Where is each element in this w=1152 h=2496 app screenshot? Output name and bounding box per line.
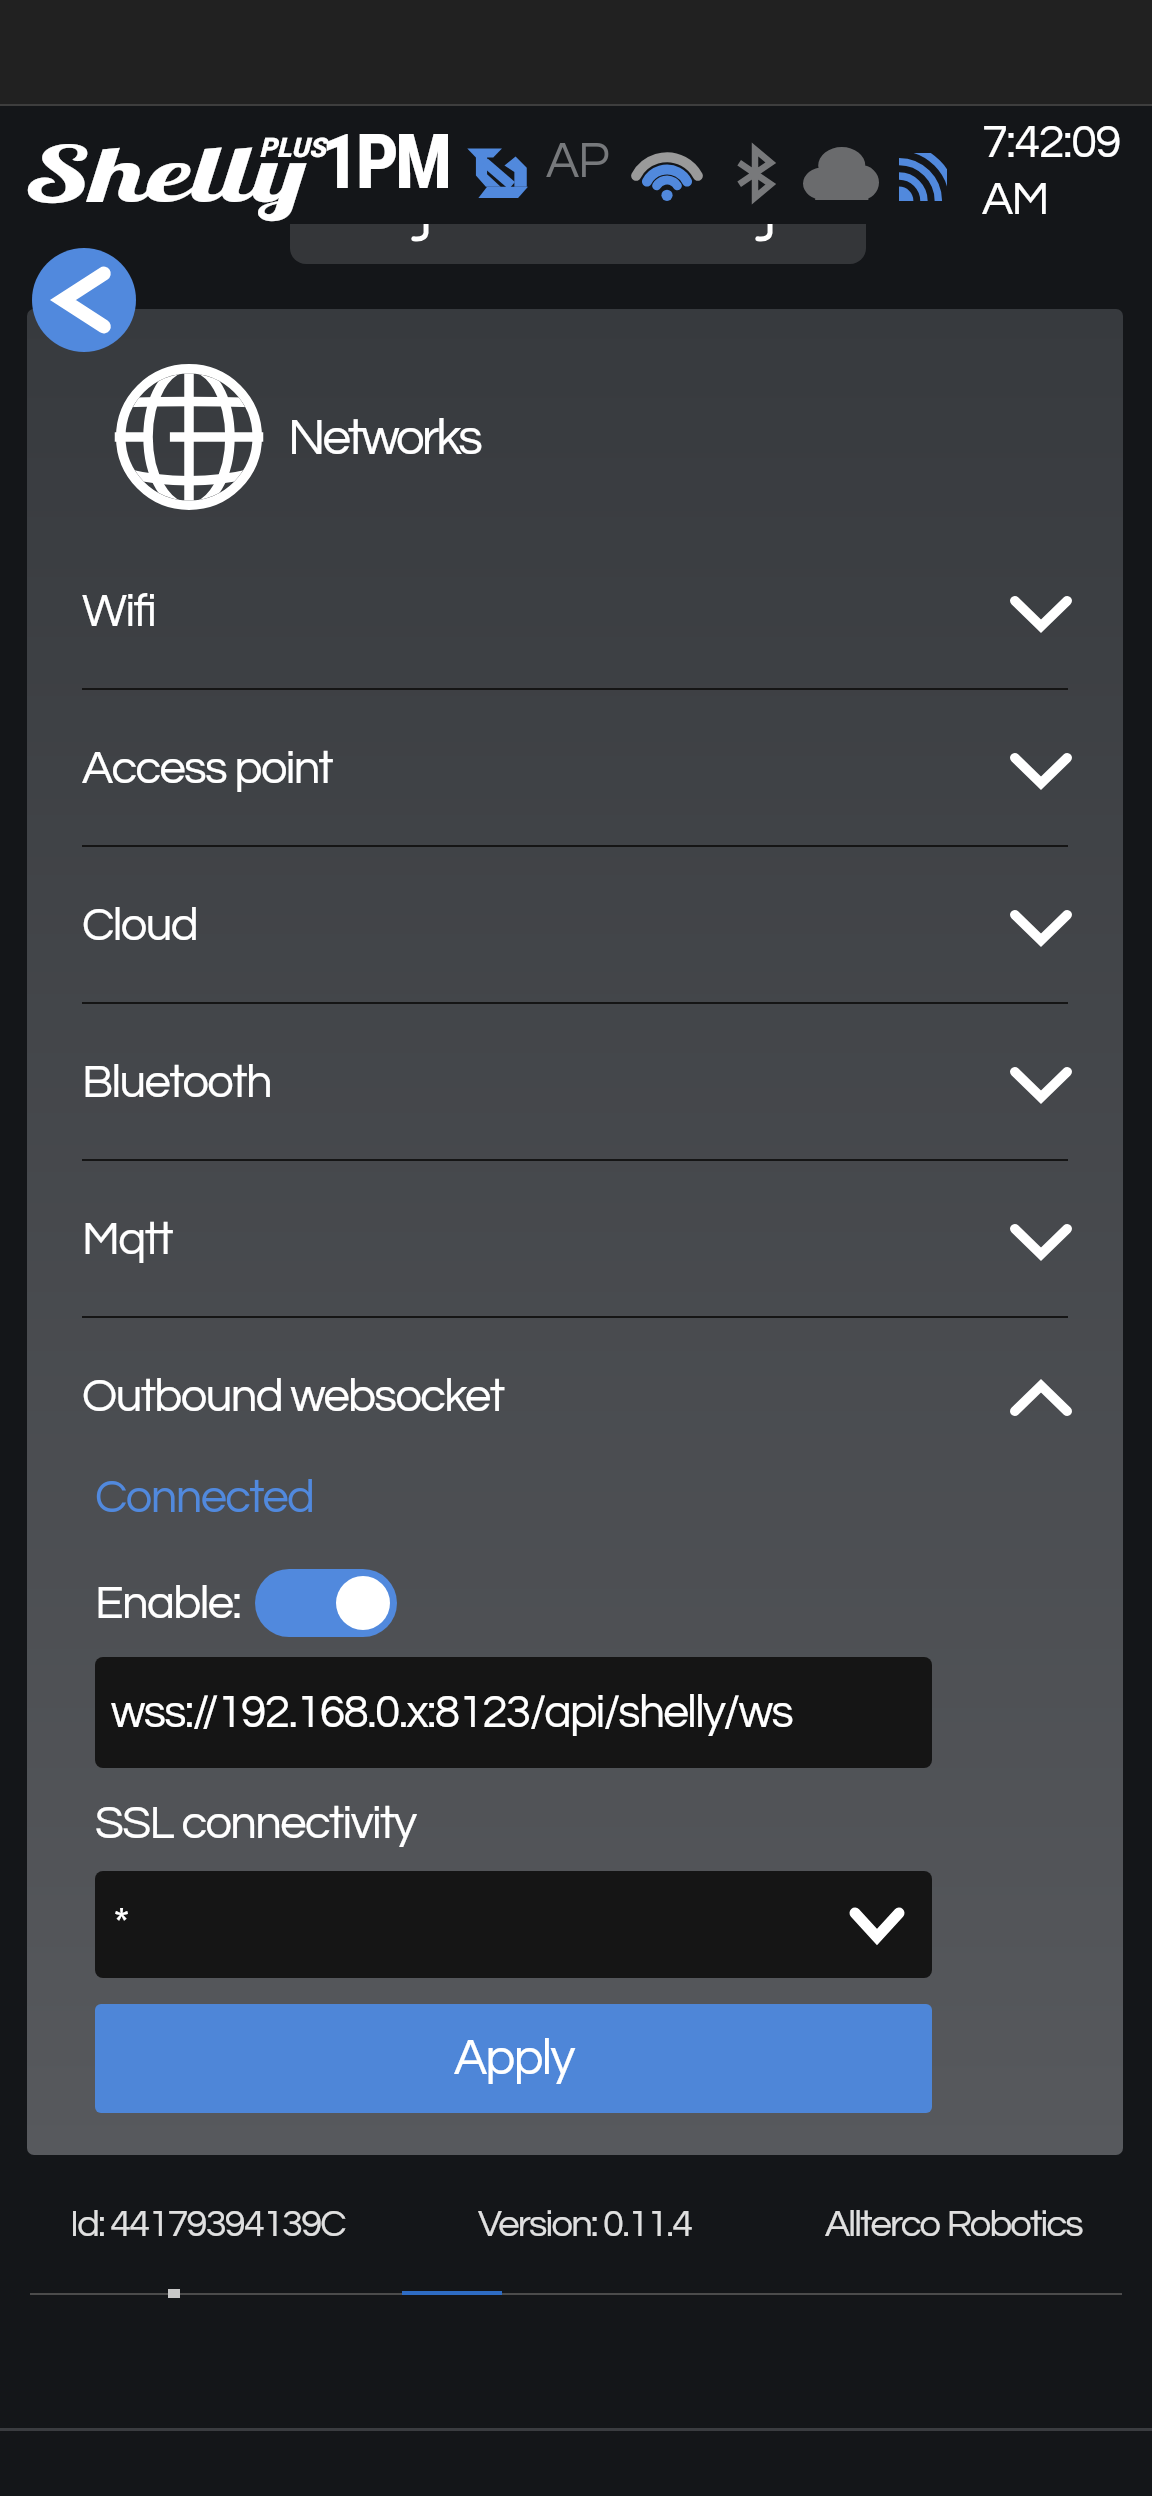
staticText: AP: [546, 136, 609, 188]
staticText: Id: 44179394139C: [70, 2205, 345, 2244]
staticText: Allterco Robotics: [825, 2205, 1082, 2244]
button[interactable]: Apply: [95, 2004, 932, 2113]
button[interactable]: Outbound websocket: [82, 1318, 1068, 1473]
button[interactable]: wss://192.168.0.x:8123/api/shelly/ws: [95, 1657, 932, 1768]
staticText: wss://192.168.0.x:8123/api/shelly/ws: [111, 1689, 793, 1736]
staticText: Apply: [454, 2033, 574, 2085]
staticText: Version: 0.11.4: [478, 2205, 692, 2244]
staticText: Access point: [82, 744, 333, 792]
button[interactable]: Enable toggle: [255, 1569, 397, 1637]
staticText: Networks: [288, 412, 480, 465]
button[interactable]: Back: [32, 248, 136, 352]
staticText: Shelly: [28, 125, 308, 222]
staticText: Connected: [95, 1473, 314, 1521]
button[interactable]: Wifi: [82, 533, 1068, 690]
staticText: 7:42:09 AM: [982, 118, 1120, 224]
staticText: Wifi: [82, 587, 156, 635]
button[interactable]: Cloud: [82, 847, 1068, 1004]
staticText: SSL connectivity: [95, 1799, 416, 1847]
staticText: 1PM: [321, 117, 449, 206]
staticText: Cloud: [82, 901, 198, 949]
staticText: PLUS: [259, 132, 326, 164]
button[interactable]: Bluetooth: [82, 1004, 1068, 1161]
staticText: Enable:: [95, 1579, 241, 1627]
staticText: Outbound websocket: [82, 1372, 504, 1420]
button[interactable]: *: [95, 1871, 932, 1978]
button[interactable]: Access point: [82, 690, 1068, 847]
button[interactable]: Mqtt: [82, 1161, 1068, 1318]
staticText: Mqtt: [82, 1215, 173, 1263]
staticText: *: [113, 1901, 129, 1948]
staticText: Bluetooth: [82, 1058, 271, 1106]
